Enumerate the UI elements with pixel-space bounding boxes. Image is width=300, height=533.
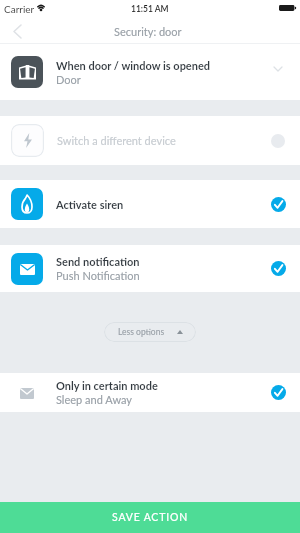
- button[interactable]: Less options: [104, 322, 196, 342]
- staticText: Send notification: [56, 255, 140, 268]
- button[interactable]: SAVE ACTION: [0, 502, 300, 533]
- staticText: Only in certain mode: [56, 379, 158, 392]
- button[interactable]: Only in certain mode: [0, 373, 300, 412]
- staticText: Push Notification: [56, 269, 140, 282]
- button[interactable]: Activate siren: [0, 180, 300, 228]
- staticText: Activate siren: [56, 198, 124, 211]
- staticText: Switch a different device: [57, 134, 176, 147]
- button[interactable]: When door / window is opened: [0, 44, 300, 100]
- staticText: Carrier: [4, 3, 35, 15]
- staticText: Less options: [118, 327, 165, 337]
- staticText: When door / window is opened: [56, 59, 211, 72]
- staticText: Door: [56, 73, 81, 86]
- staticText: Sleep and Away: [56, 393, 132, 406]
- button[interactable]: Back: [0, 20, 34, 43]
- staticText: SAVE ACTION: [112, 511, 188, 524]
- staticText: Security: door: [114, 25, 182, 38]
- staticText: 11:51 AM: [131, 4, 169, 14]
- button[interactable]: Switch a different device: [0, 116, 300, 165]
- button[interactable]: Send notification: [0, 245, 300, 292]
